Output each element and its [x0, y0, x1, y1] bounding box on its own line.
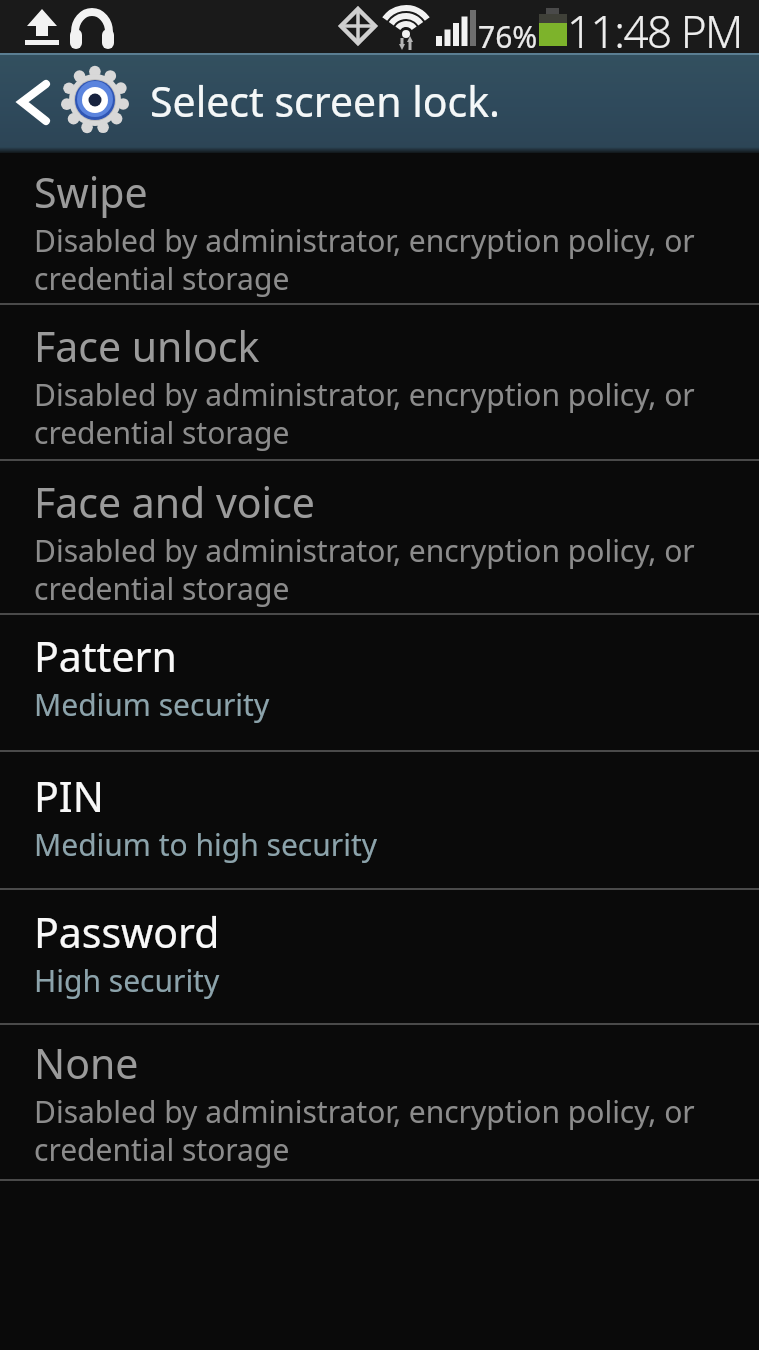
button[interactable]: Password — [0, 890, 759, 1025]
button[interactable]: Face and voice — [0, 461, 759, 615]
button[interactable]: Select screen lock. — [0, 53, 759, 153]
staticText: Face and voice — [34, 474, 315, 530]
button[interactable]: Swipe — [0, 153, 759, 305]
button[interactable]: Pattern — [0, 615, 759, 752]
staticText: Swipe — [34, 164, 148, 220]
staticText: Medium to high security — [34, 824, 378, 865]
staticText: Disabled by administrator, encryption po… — [34, 530, 695, 609]
staticText: Disabled by administrator, encryption po… — [34, 374, 695, 453]
staticText: Password — [34, 904, 220, 960]
staticText: Disabled by administrator, encryption po… — [34, 1091, 695, 1170]
staticText: 76% — [478, 16, 538, 53]
staticText: 11:48 PM — [567, 1, 742, 53]
staticText: Face unlock — [34, 318, 260, 374]
staticText: PIN — [34, 768, 104, 824]
staticText: Disabled by administrator, encryption po… — [34, 220, 695, 299]
staticText: Select screen lock. — [150, 73, 501, 129]
staticText: None — [34, 1035, 139, 1091]
staticText: Pattern — [34, 628, 177, 684]
staticText: High security — [34, 960, 220, 1001]
button[interactable]: Face unlock — [0, 305, 759, 461]
button[interactable]: PIN — [0, 752, 759, 890]
button[interactable]: None — [0, 1025, 759, 1181]
staticText: Medium security — [34, 684, 270, 725]
